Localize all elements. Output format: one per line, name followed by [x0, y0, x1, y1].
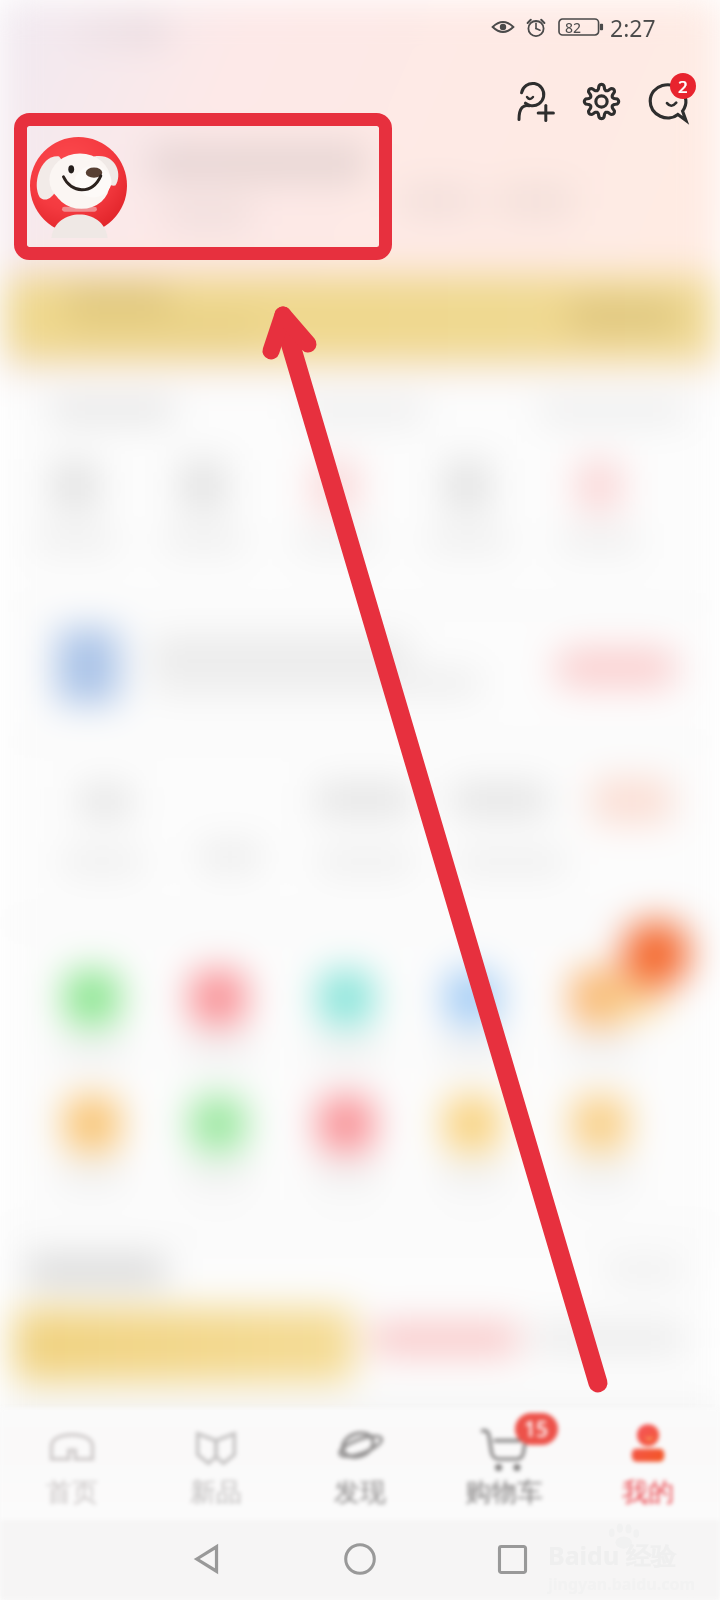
staticText: 15 — [524, 1415, 549, 1444]
button[interactable]: 我的 — [576, 1408, 720, 1520]
button[interactable]: Home — [326, 1526, 394, 1592]
button[interactable]: Add friend — [502, 68, 568, 134]
staticText: 2 — [678, 75, 688, 98]
button[interactable]: 发现 — [288, 1408, 432, 1520]
button[interactable]: 15 — [432, 1408, 576, 1520]
button[interactable]: Messages — [634, 68, 700, 134]
staticText: 2:27 — [610, 12, 656, 43]
staticText: 我的 — [622, 1476, 674, 1509]
staticText: 发现 — [334, 1476, 386, 1509]
button[interactable]: Settings — [568, 68, 634, 134]
button[interactable]: 新品 — [144, 1408, 288, 1520]
staticText: 新品 — [190, 1476, 242, 1509]
staticText: 82 — [565, 18, 582, 36]
button[interactable]: Back — [173, 1526, 241, 1592]
button[interactable]: Recents — [478, 1526, 546, 1592]
button[interactable]: 首页 — [0, 1408, 144, 1520]
staticText: Baidu 经验 — [548, 1538, 676, 1572]
staticText: 首页 — [46, 1476, 98, 1509]
staticText: 购物车 — [465, 1476, 543, 1509]
